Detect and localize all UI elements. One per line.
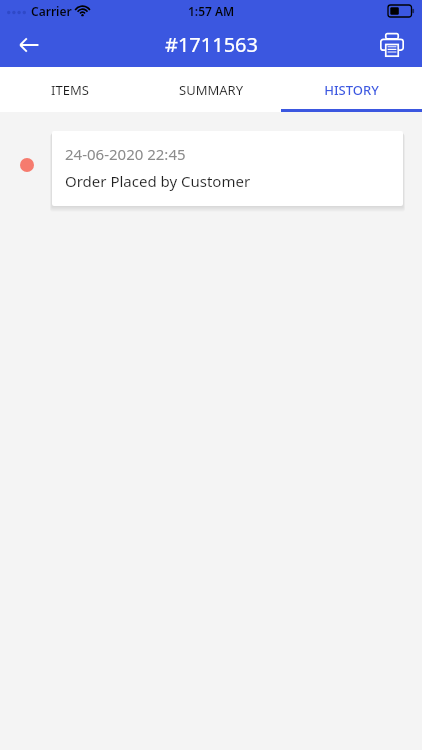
button[interactable]: 24-06-2020 22:45 [52,131,403,206]
button[interactable]: ITEMS [0,67,140,112]
staticText: #1711563 [165,31,258,58]
staticText: Carrier [31,3,72,19]
staticText: HISTORY [324,81,379,99]
staticText: 1:57 AM [188,3,235,19]
button[interactable]: Print [372,25,412,65]
staticText: 24-06-2020 22:45 [65,144,186,164]
staticText: ITEMS [51,81,89,99]
button[interactable]: Back [10,26,48,64]
staticText: SUMMARY [179,81,243,99]
staticText: Order Placed by Customer [65,171,251,191]
button[interactable]: SUMMARY [140,67,281,112]
button[interactable]: HISTORY [281,67,422,112]
